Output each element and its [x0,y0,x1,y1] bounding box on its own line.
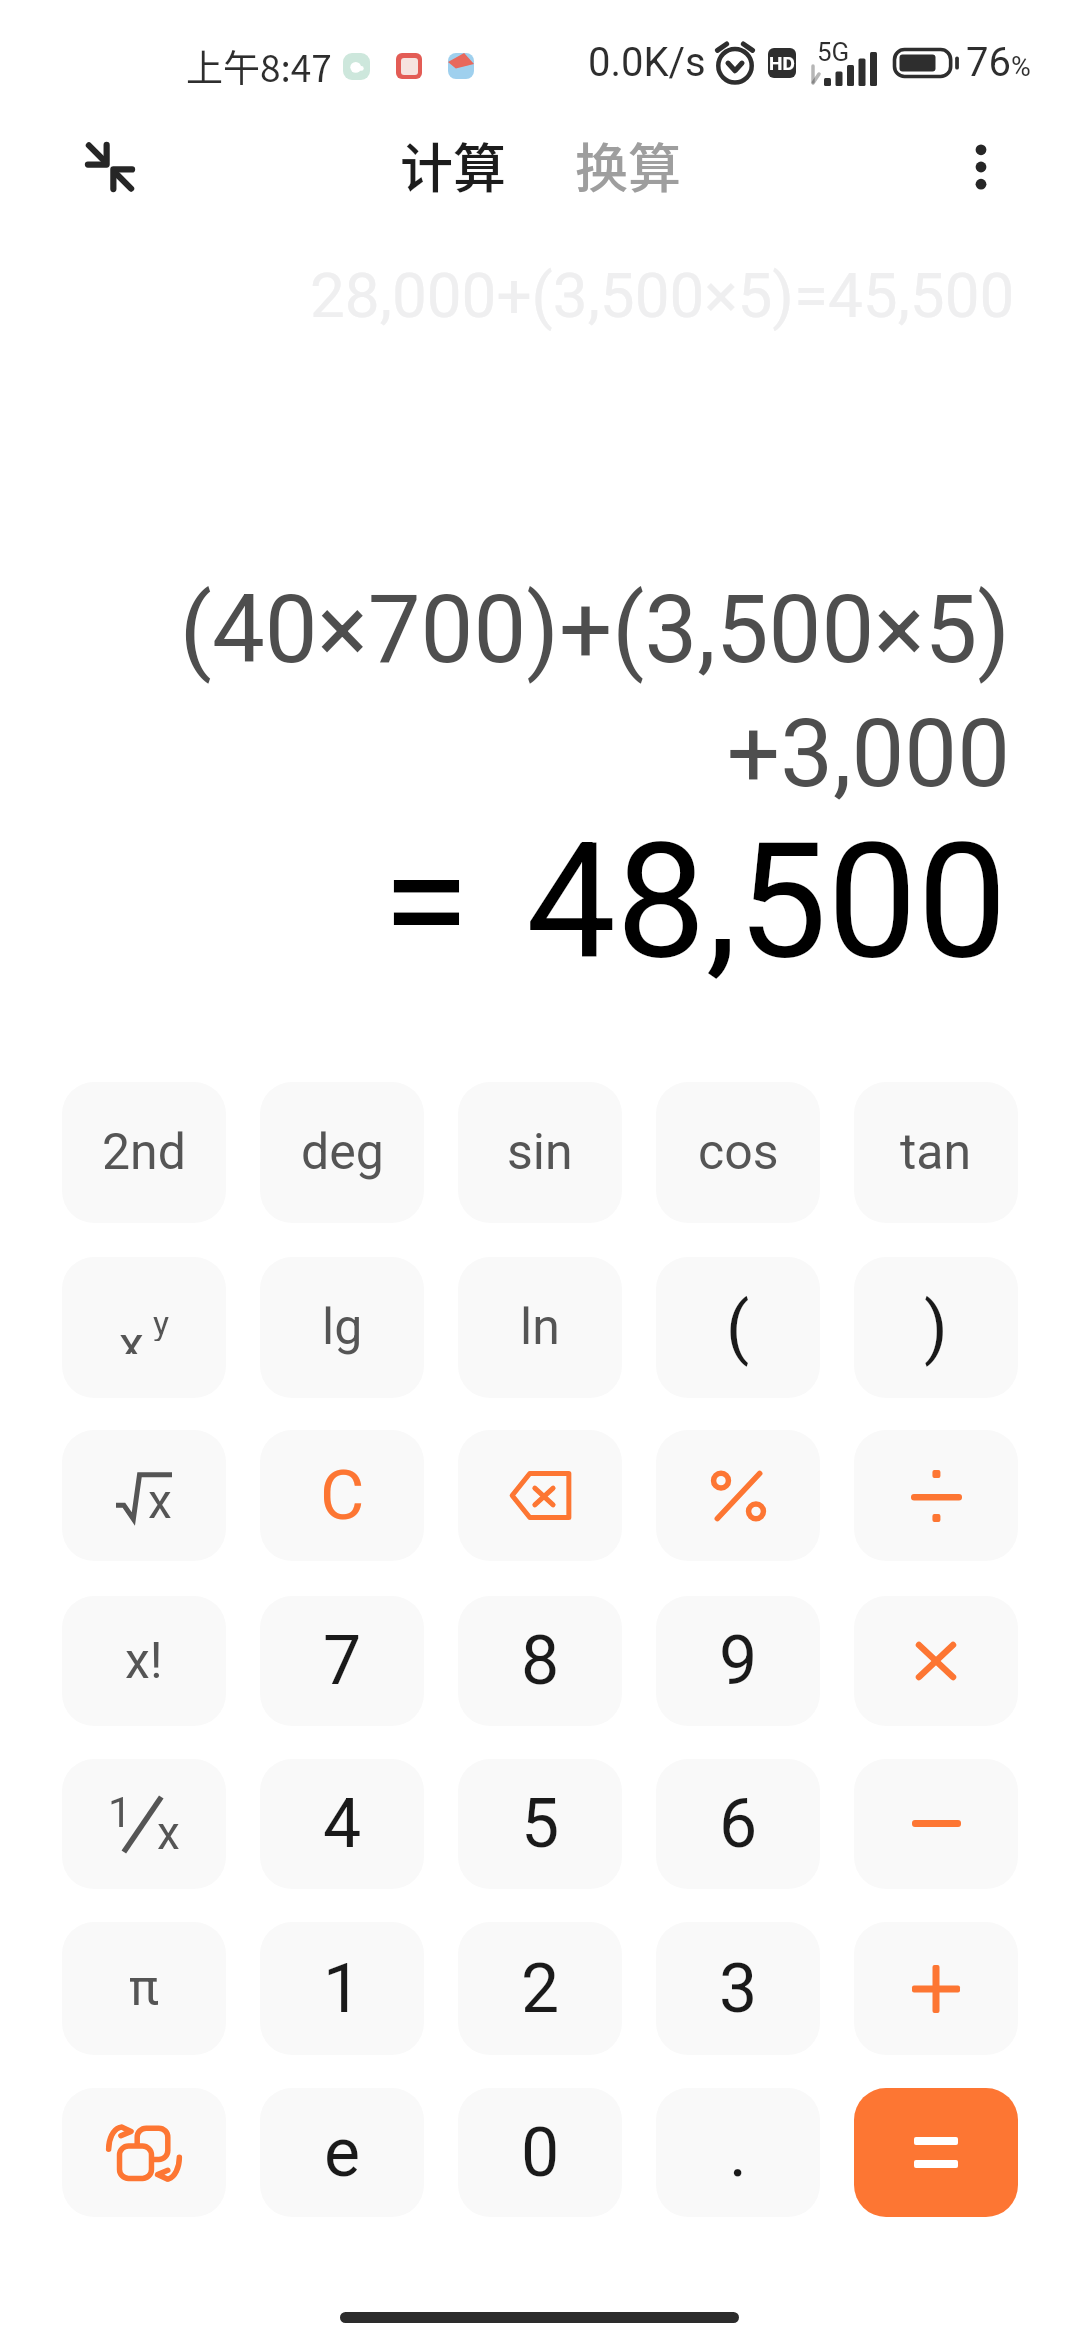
button[interactable]: 2 [458,1922,622,2055]
staticText: x [157,1806,180,1860]
button[interactable]: 5 [458,1759,622,1889]
button[interactable]: 9 [656,1596,820,1726]
staticText: 28,000+(3,500×5)=45,500 [310,259,1015,332]
button[interactable]: Multiply [854,1596,1018,1726]
button[interactable]: 6 [656,1759,820,1889]
button[interactable]: 2nd [62,1082,226,1223]
button[interactable]: ln [458,1257,622,1398]
button[interactable]: e [260,2088,424,2217]
staticText: e [324,2113,361,2193]
staticText: 5G [817,37,850,67]
staticText: ) [924,1288,948,1368]
button[interactable]: cos [656,1082,820,1223]
button[interactable]: tan [854,1082,1018,1223]
button[interactable]: Delete [458,1430,622,1561]
staticText: 0.0K/s [588,39,706,86]
button[interactable]: x to the power of y [62,1257,226,1398]
staticText: ( [726,1288,750,1368]
staticText: 9 [719,1621,758,1701]
button[interactable]: . [656,2088,820,2217]
staticText: 3 [719,1949,758,2029]
staticText: tan [900,1123,972,1182]
button[interactable]: Percent [656,1430,820,1561]
staticText: cos [698,1123,779,1182]
button[interactable]: Plus [854,1922,1018,2055]
staticText: 8 [521,1621,560,1701]
staticText: = [382,808,470,996]
button[interactable]: 7 [260,1596,424,1726]
button[interactable]: ) [854,1257,1018,1398]
staticText: (40×700)+(3,500×5) +3,000 [179,575,1010,809]
staticText: x [119,1316,144,1354]
staticText: 计算 [400,127,506,204]
staticText: 4 [323,1784,362,1864]
staticText: y [153,1303,170,1341]
button[interactable]: Minus [854,1759,1018,1889]
staticText: C [320,1456,365,1536]
staticText: 6 [719,1784,758,1864]
staticText: HD [769,52,795,74]
staticText: % [1011,51,1031,83]
button[interactable]: 4 [260,1759,424,1889]
button[interactable]: sin [458,1082,622,1223]
staticText: x [148,1473,172,1519]
staticText: π [129,1959,159,2018]
button[interactable]: C [260,1430,424,1561]
staticText: 48,500 [526,808,1008,996]
button[interactable]: 3 [656,1922,820,2055]
staticText: . [729,2113,747,2193]
staticText: 上午8:47 [186,39,332,93]
button[interactable]: More options [933,119,1029,215]
staticText: 76 [966,39,1011,86]
button[interactable]: lg [260,1257,424,1398]
button[interactable]: Unit convert [62,2088,226,2217]
button[interactable]: 1 [260,1922,424,2055]
button[interactable]: x! [62,1596,226,1726]
button[interactable]: π [62,1922,226,2055]
button[interactable]: ( [656,1257,820,1398]
staticText: deg [301,1123,384,1182]
button[interactable]: 8 [458,1596,622,1726]
staticText: ln [520,1298,560,1357]
staticText: 0 [521,2113,560,2193]
staticText: sin [507,1123,573,1182]
button[interactable]: Collapse [62,119,158,215]
button[interactable]: Square root [62,1430,226,1561]
button[interactable]: Divide [854,1430,1018,1561]
button[interactable]: One divided by x [62,1759,226,1889]
button[interactable]: Equals [854,2088,1018,2217]
staticText: 1 [323,1949,362,2029]
staticText: 换算 [575,127,681,204]
staticText: 7 [323,1621,362,1701]
staticText: 1 [108,1788,132,1837]
staticText: 5 [521,1784,560,1864]
button[interactable]: 0 [458,2088,622,2217]
staticText: 2 [521,1949,560,2029]
staticText: x! [125,1632,163,1691]
button[interactable]: 换算 [565,123,691,208]
staticText: 2nd [102,1123,186,1182]
button[interactable]: deg [260,1082,424,1223]
button[interactable]: 计算 [390,123,516,208]
staticText: lg [322,1298,363,1357]
